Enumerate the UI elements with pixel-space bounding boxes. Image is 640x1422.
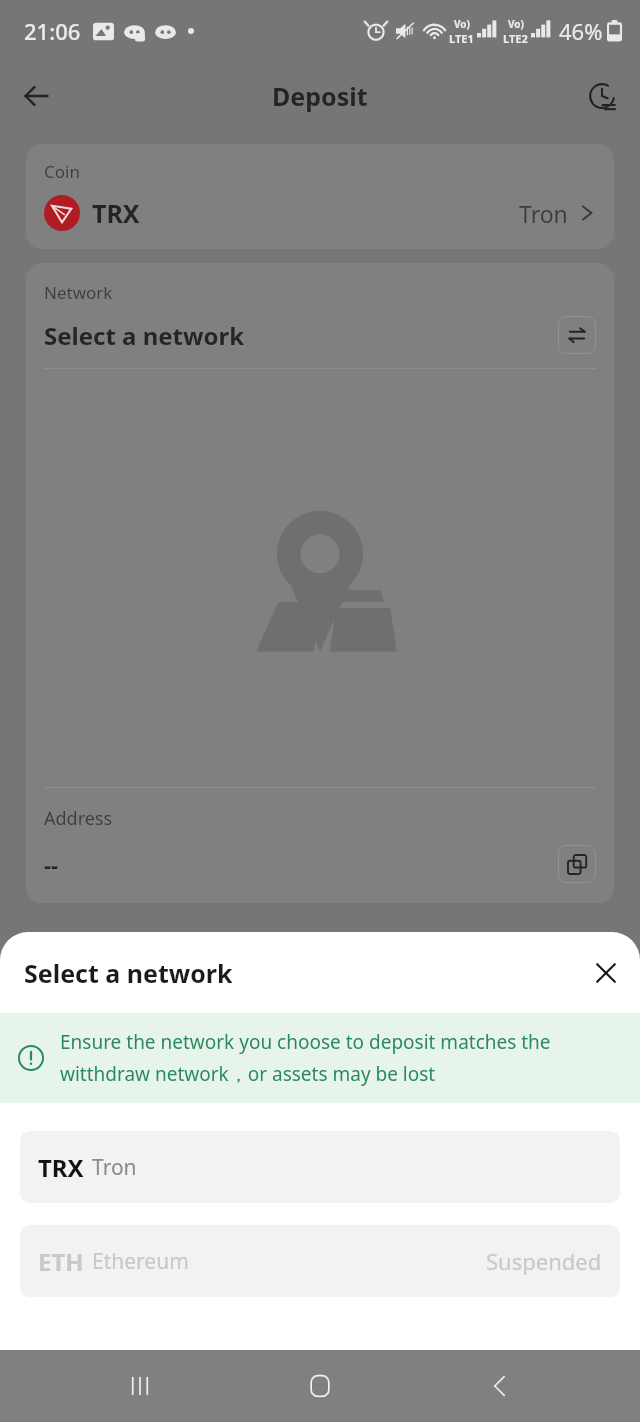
staticText: Select a network [24, 956, 233, 990]
staticText: Vo) [454, 17, 470, 31]
staticText: 21:06 [24, 16, 81, 46]
staticText: Ensure the network you choose to deposit… [60, 1029, 618, 1087]
button[interactable]: Coin [26, 144, 614, 249]
staticText: Tron [519, 198, 568, 229]
button[interactable]: Close [580, 947, 632, 999]
staticText: Vo) [508, 17, 524, 31]
staticText: -- [44, 849, 59, 879]
button[interactable]: Deposit history [576, 70, 628, 122]
staticText: Tron [92, 1153, 137, 1182]
button[interactable]: ETH [20, 1225, 620, 1297]
button[interactable]: Home [280, 1350, 360, 1422]
button[interactable]: Switch network [558, 316, 596, 354]
button[interactable]: Back [460, 1350, 540, 1422]
staticText: TRX [92, 196, 140, 230]
staticText: Network [44, 281, 113, 304]
staticText: Coin [44, 160, 80, 183]
button[interactable]: TRX [20, 1131, 620, 1203]
staticText: Address [44, 806, 113, 831]
staticText: LTE1 [449, 31, 474, 46]
button[interactable]: Copy address [558, 845, 596, 883]
staticText: Ethereum [92, 1247, 189, 1276]
button[interactable]: Back [10, 70, 62, 122]
staticText: ETH [38, 1245, 84, 1278]
staticText: LTE2 [503, 31, 528, 46]
staticText: Select a network [44, 319, 245, 352]
button[interactable]: Recents [100, 1350, 180, 1422]
staticText: TRX [38, 1151, 84, 1184]
staticText: Suspended [486, 1246, 602, 1276]
staticText: 46% [559, 16, 603, 46]
staticText: Deposit [272, 79, 368, 113]
